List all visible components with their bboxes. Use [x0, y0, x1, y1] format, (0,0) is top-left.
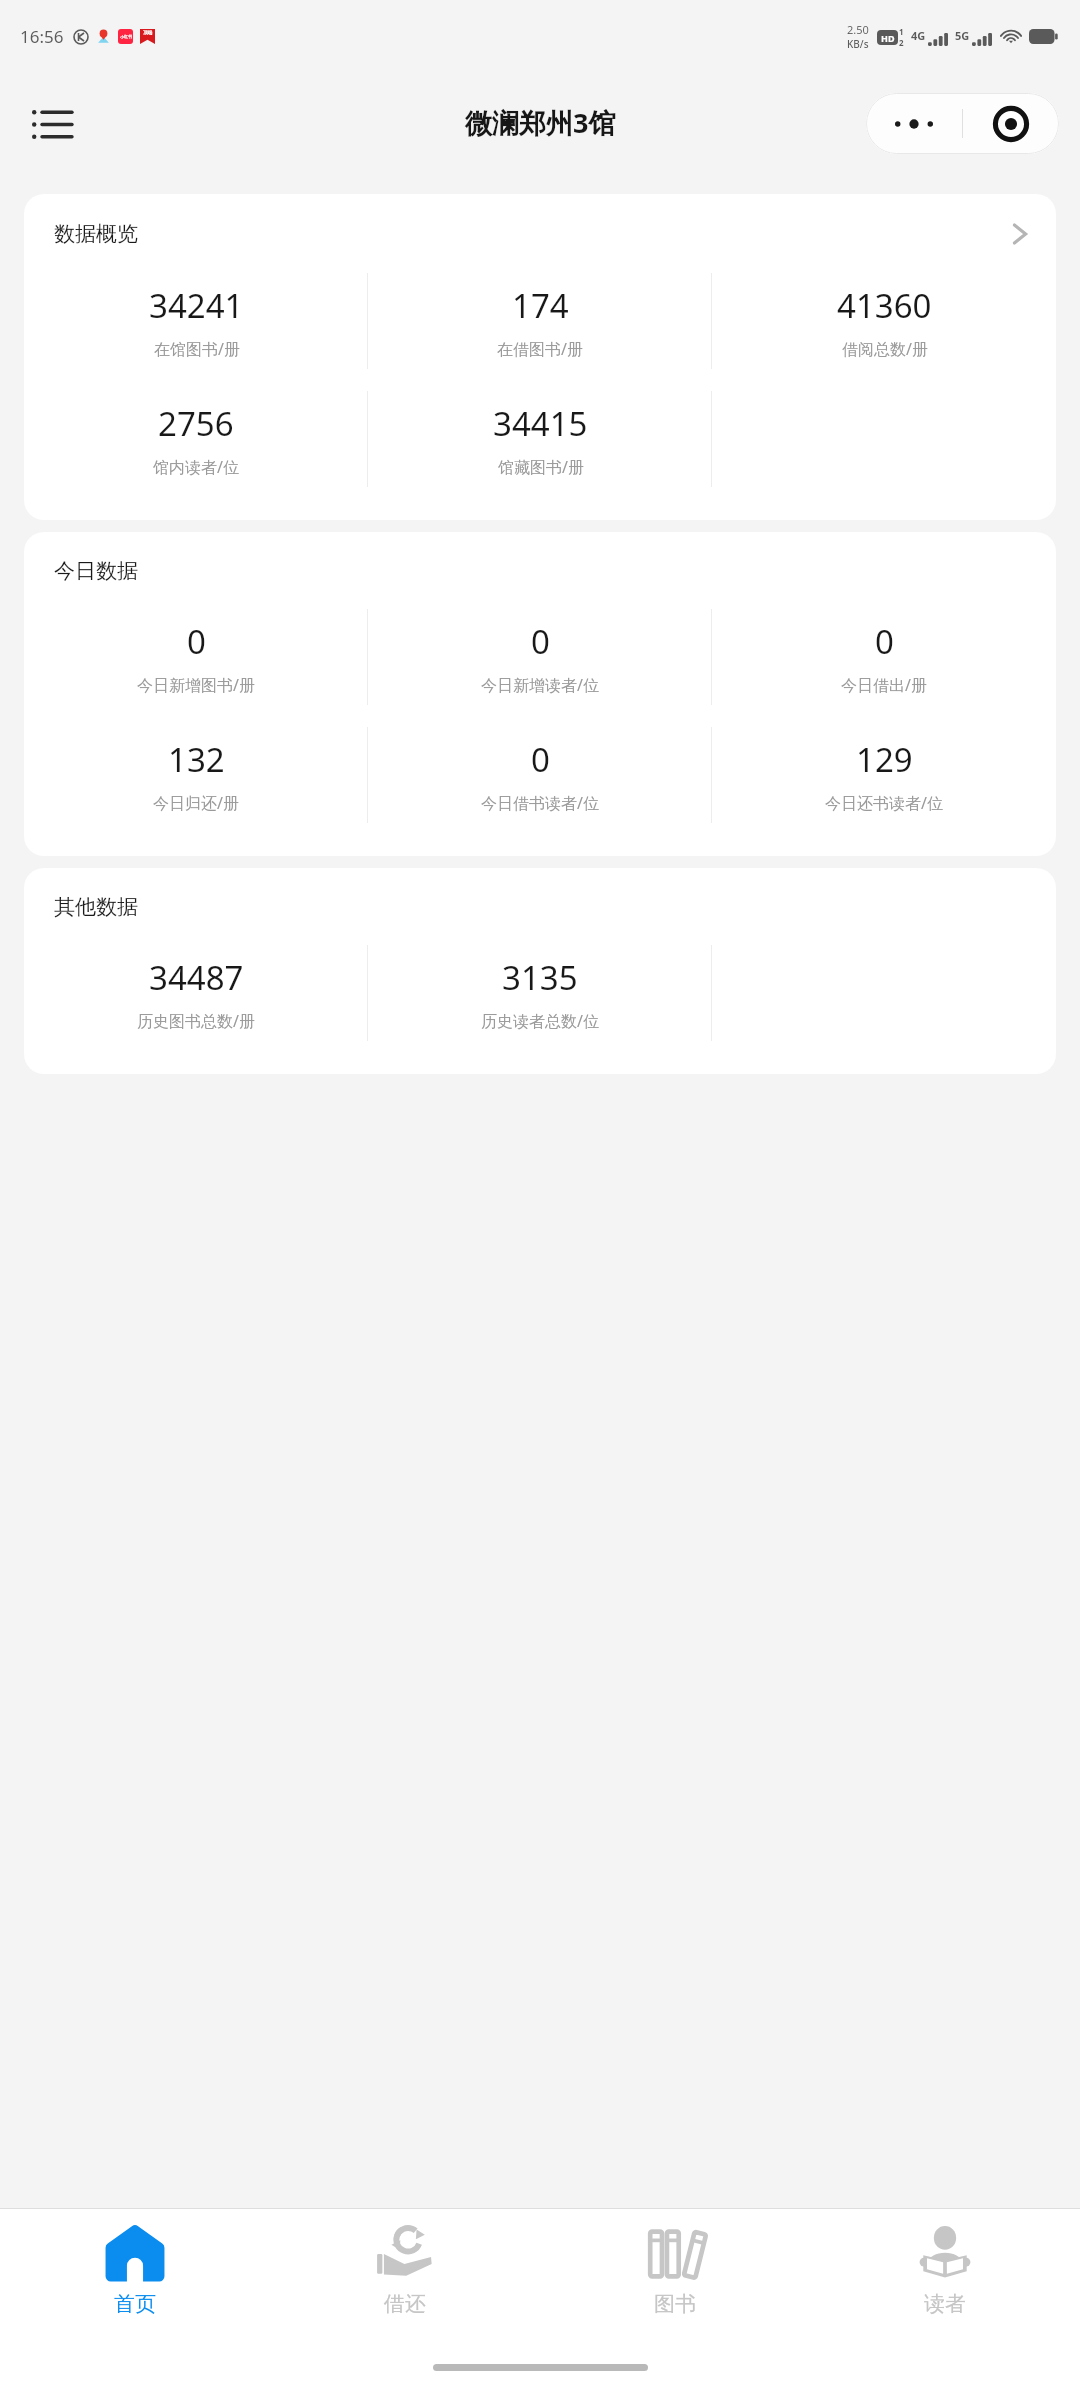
staticText: 今日新增读者/位 — [481, 674, 599, 696]
staticText: 历史读者总数/位 — [481, 1010, 599, 1032]
staticText: 41360 — [837, 283, 932, 328]
staticText: 图书 — [654, 2291, 696, 2317]
button[interactable]: 更多 — [866, 93, 962, 154]
staticText: 129 — [856, 737, 913, 782]
staticText: 借阅总数/册 — [842, 338, 928, 360]
button[interactable]: 关闭 — [963, 93, 1059, 154]
staticText: 借还 — [384, 2291, 426, 2317]
staticText: 今日新增图书/册 — [137, 674, 255, 696]
staticText: 今日数据 — [54, 558, 138, 584]
staticText: 微澜郑州3馆 — [465, 104, 616, 141]
staticText: KB/s — [847, 37, 869, 51]
staticText: 今日借出/册 — [841, 674, 927, 696]
button[interactable]: 今日数据 — [24, 532, 1056, 856]
staticText: HD — [881, 32, 895, 44]
button[interactable]: 读者 — [810, 2209, 1080, 2364]
button[interactable]: 菜单 — [26, 98, 78, 150]
staticText: 3135 — [502, 955, 578, 1000]
button[interactable]: 借还 — [270, 2209, 540, 2364]
staticText: 34241 — [149, 283, 244, 328]
staticText: 2756 — [158, 401, 234, 446]
staticText: 今日借书读者/位 — [481, 792, 599, 814]
staticText: 小红书 — [120, 34, 132, 39]
staticText: 2 — [899, 37, 904, 48]
staticText: 在馆图书/册 — [154, 338, 240, 360]
staticText: 其他数据 — [54, 894, 138, 920]
staticText: 174 — [512, 283, 569, 328]
staticText: 馆藏图书/册 — [498, 456, 584, 478]
button[interactable]: 数据概览 — [24, 194, 1056, 520]
staticText: 5G — [955, 28, 970, 43]
staticText: 在借图书/册 — [497, 338, 583, 360]
staticText: 今日归还/册 — [153, 792, 239, 814]
staticText: 数据概览 — [54, 221, 138, 247]
staticText: 读者 — [924, 2291, 966, 2317]
staticText: 0 — [875, 619, 894, 664]
staticText: 0 — [187, 619, 206, 664]
staticText: 1 — [899, 26, 904, 37]
button[interactable]: 图书 — [540, 2209, 810, 2364]
staticText: 0 — [531, 737, 550, 782]
staticText: 2.50 — [847, 22, 869, 37]
staticText: 历史图书总数/册 — [137, 1010, 255, 1032]
staticText: 16:56 — [20, 25, 64, 48]
button[interactable]: 其他数据 — [24, 868, 1056, 1074]
button[interactable]: 首页 — [0, 2209, 270, 2364]
staticText: 首页 — [114, 2291, 156, 2317]
staticText: 0 — [531, 619, 550, 664]
staticText: 34415 — [493, 401, 588, 446]
staticText: 132 — [168, 737, 225, 782]
staticText: 4G — [911, 28, 926, 43]
staticText: 顶端 — [143, 30, 152, 36]
staticText: 今日还书读者/位 — [825, 792, 943, 814]
staticText: 34487 — [149, 955, 244, 1000]
staticText: 馆内读者/位 — [153, 456, 239, 478]
